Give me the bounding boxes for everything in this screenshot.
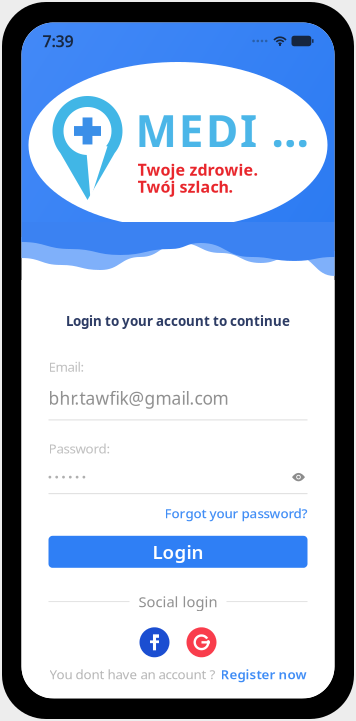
staticText: Email:: [48, 358, 84, 375]
staticText: Login to your account to continue: [66, 312, 290, 330]
staticText: MEDI GO: [135, 101, 342, 159]
staticText: 7:39: [42, 30, 73, 52]
button[interactable]: Sign in with Facebook: [139, 627, 169, 657]
button[interactable]: Forgot your password?: [48, 504, 307, 522]
staticText: Password:: [48, 439, 110, 457]
staticText: Twój szlach.: [137, 176, 232, 197]
button[interactable]: Show password: [289, 470, 307, 484]
staticText: Forgot your password?: [164, 504, 307, 522]
button[interactable]: Sign in with Google: [186, 627, 216, 657]
staticText: Twoje zdrowie.: [137, 159, 257, 180]
button[interactable]: Login: [48, 536, 307, 568]
staticText: Login: [152, 539, 203, 564]
staticText: Social login: [138, 592, 217, 611]
staticText: You dont have an account ?: [49, 665, 215, 683]
staticText: Register now: [220, 665, 306, 683]
staticText: bhr.tawfik@gmail.com: [48, 386, 228, 409]
button[interactable]: Register now: [220, 665, 306, 683]
